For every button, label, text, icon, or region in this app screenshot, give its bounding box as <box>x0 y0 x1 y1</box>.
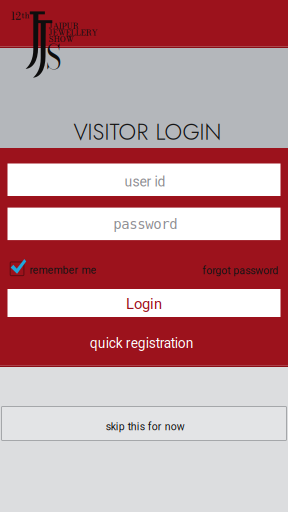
staticText: S <box>44 31 64 83</box>
staticText: remember me <box>29 264 96 276</box>
staticText: 12 <box>11 8 20 24</box>
staticText: skip this for now <box>106 420 185 433</box>
button[interactable]: forgot password <box>197 262 283 280</box>
staticText: user id <box>124 174 165 190</box>
staticText: forgot password <box>202 264 278 277</box>
staticText: Login <box>126 295 162 313</box>
staticText: JEWELLERY <box>48 26 97 39</box>
staticText: quick registration <box>90 335 194 351</box>
staticText: SHOW <box>48 33 73 45</box>
button[interactable]: quick registration <box>82 333 202 353</box>
staticText: JAIPUR <box>48 20 78 32</box>
staticText: VISITOR LOGIN <box>73 116 221 148</box>
button[interactable]: skip this for now <box>1 406 286 440</box>
button[interactable]: Login <box>7 289 280 317</box>
staticText: th <box>21 9 29 21</box>
staticText: password <box>113 216 177 232</box>
button[interactable]: remember me <box>10 260 100 278</box>
